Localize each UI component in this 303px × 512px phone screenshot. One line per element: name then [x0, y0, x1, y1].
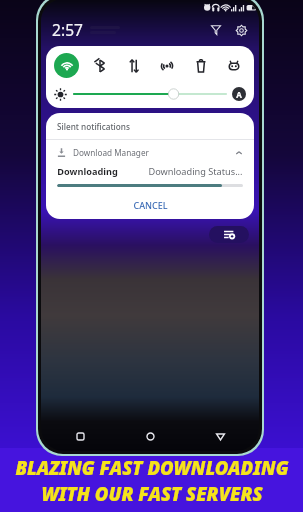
staticText: A [236, 89, 242, 100]
button[interactable]: CANCEL [46, 194, 254, 216]
button[interactable]: Hotspot [154, 53, 179, 78]
button[interactable]: Mobile data [121, 53, 146, 78]
button[interactable]: Bluetooth off [87, 53, 112, 78]
button[interactable]: Recent apps [69, 425, 91, 447]
button[interactable]: Filter notifications [207, 21, 225, 39]
button[interactable]: Back [209, 425, 231, 447]
staticText: Downloading [57, 165, 118, 178]
staticText: Silent notifications [57, 121, 130, 132]
button[interactable]: Brightness [74, 87, 226, 101]
staticText: CANCEL [133, 199, 168, 211]
button[interactable]: Battery saver [188, 53, 213, 78]
staticText: Downloading Status... [148, 165, 243, 178]
staticText: BLAZING FAST DOWNLOADING [15, 455, 289, 480]
staticText: 2:57 [52, 19, 83, 40]
button[interactable]: Settings [232, 21, 250, 39]
button[interactable]: Wi-Fi [54, 53, 79, 78]
button[interactable]: Home [139, 425, 161, 447]
button[interactable]: Auto rotate [221, 53, 246, 78]
button[interactable]: Manage notifications [209, 226, 249, 243]
staticText: Download Manager [73, 147, 149, 158]
staticText: WITH OUR FAST SERVERS [41, 481, 263, 506]
button[interactable]: Download Manager [57, 147, 243, 158]
button[interactable]: Auto brightness [232, 87, 246, 101]
